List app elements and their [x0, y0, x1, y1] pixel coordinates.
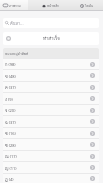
button[interactable]: จ (20)	[3, 105, 99, 115]
button[interactable]: ไขมัน	[80, 0, 94, 11]
staticText: หมวดหมู่คำศัพท์	[5, 51, 29, 56]
staticText: หน้าหลัก	[47, 3, 60, 8]
staticText: ก (98)	[5, 61, 16, 67]
button[interactable]: ค (37)	[3, 82, 99, 92]
staticText: ณ (17)	[5, 153, 17, 159]
staticText: ข (48)	[5, 73, 16, 79]
button[interactable]: ค้นหา...	[3, 18, 99, 28]
staticText: ค้นหา...	[10, 20, 24, 26]
button[interactable]: ญ (11)	[3, 162, 99, 173]
staticText: ฏ (4)	[5, 176, 14, 182]
staticText: ญ (11)	[5, 165, 17, 171]
button[interactable]: Menu	[4, 34, 13, 43]
button[interactable]: ฏ (4)	[3, 174, 99, 183]
staticText: ซ (28)	[5, 142, 16, 148]
staticText: ฉ (37)	[5, 119, 16, 125]
button[interactable]: หน้าหลัก	[42, 0, 60, 11]
staticText: ทำสำเร็จ	[43, 35, 60, 42]
staticText: ช (16)	[5, 130, 16, 136]
button[interactable]: ซ (28)	[3, 139, 99, 150]
button[interactable]: ช (16)	[3, 128, 99, 138]
staticText: จ (20)	[5, 107, 16, 113]
staticText: ภาพรวม	[9, 3, 21, 8]
button[interactable]: ฉ (37)	[3, 116, 99, 127]
button[interactable]: ข (48)	[3, 70, 99, 81]
button[interactable]: ง (9)	[3, 93, 99, 104]
staticText: ค (37)	[5, 84, 16, 90]
button[interactable]: ก (98)	[3, 59, 99, 69]
button[interactable]: ภาพรวม	[3, 0, 21, 11]
staticText: ไขมัน	[85, 3, 94, 8]
staticText: ง (9)	[5, 96, 13, 102]
button[interactable]: ณ (17)	[3, 151, 99, 161]
